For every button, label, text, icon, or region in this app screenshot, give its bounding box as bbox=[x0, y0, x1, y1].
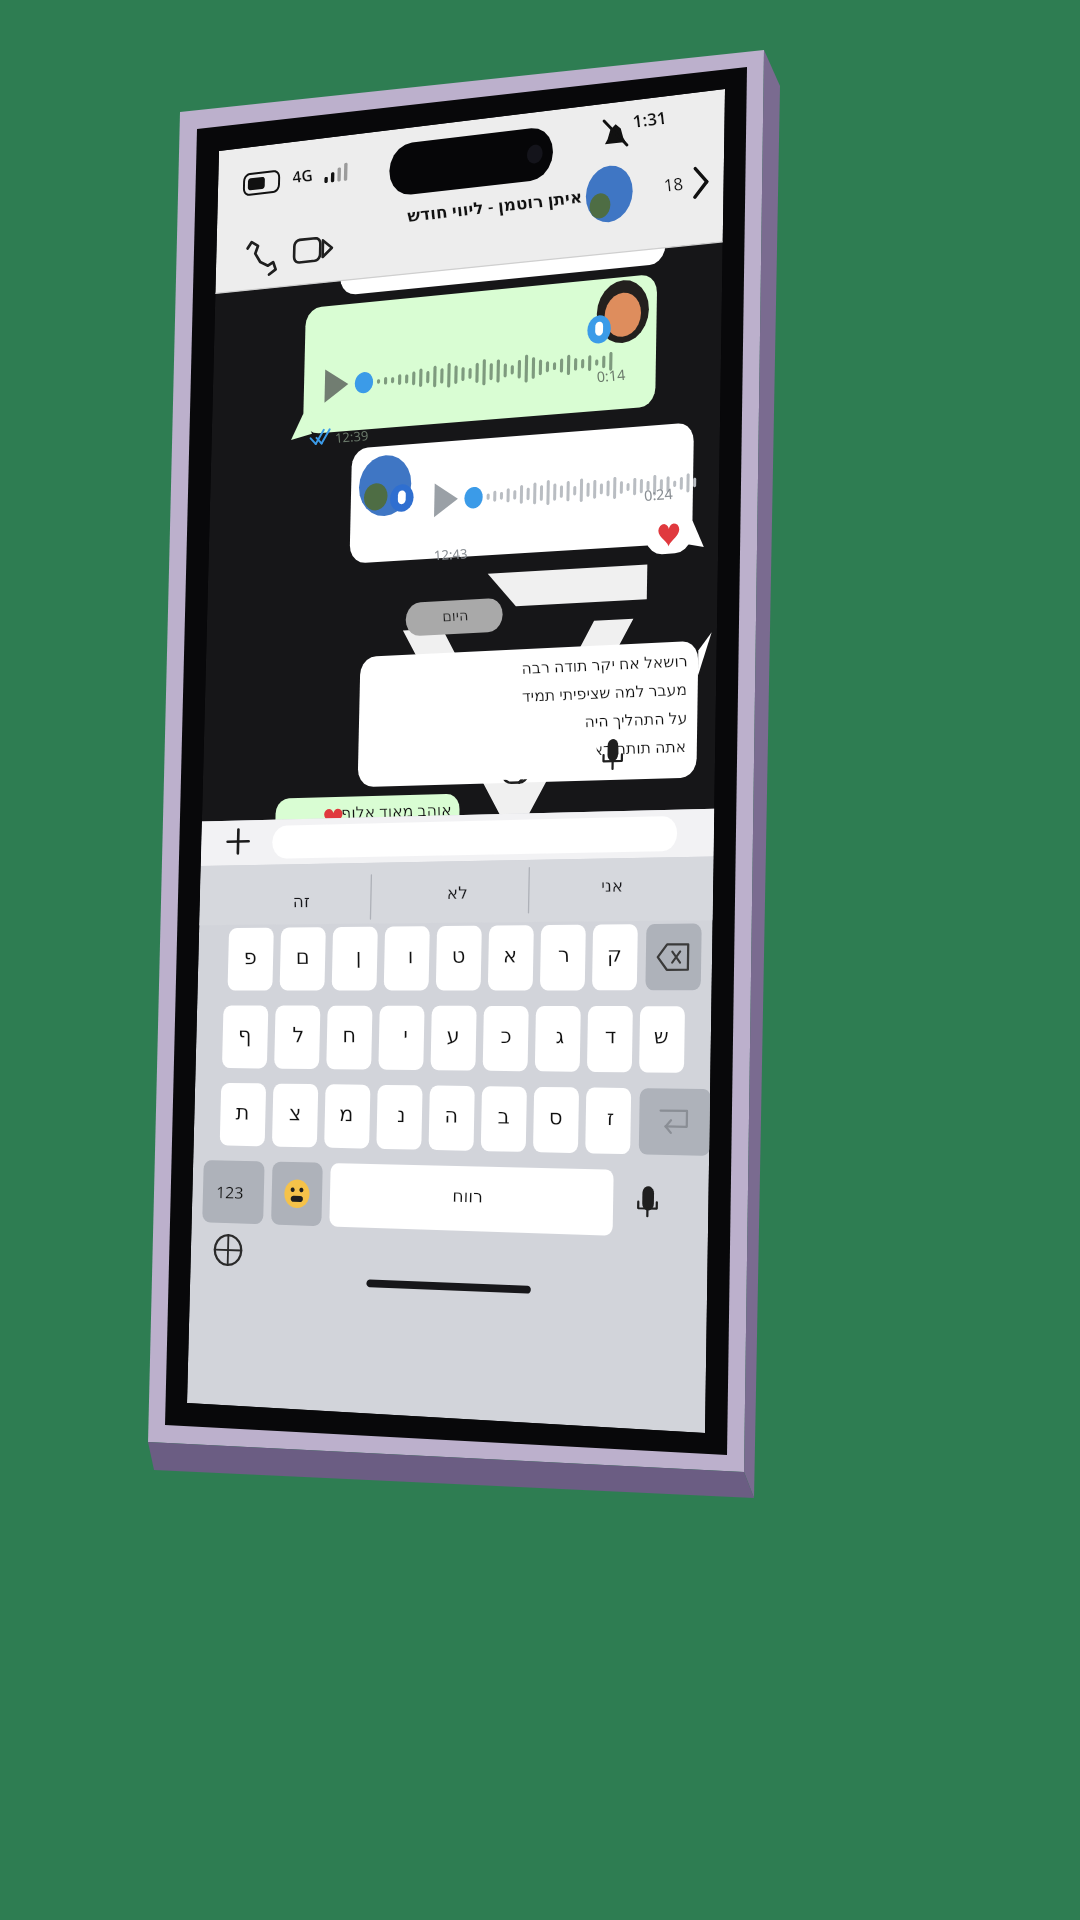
button[interactable]: WhatsApp chat on iPhone bbox=[0, 0, 1080, 1920]
